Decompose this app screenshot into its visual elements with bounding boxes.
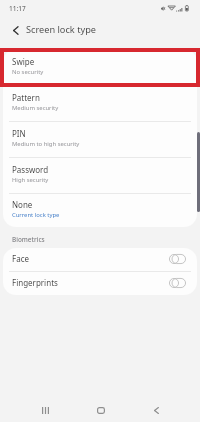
staticText: Face bbox=[12, 253, 29, 264]
staticText: Biometrics bbox=[12, 235, 45, 244]
staticText: High security bbox=[12, 176, 49, 184]
button[interactable]: Recent apps bbox=[33, 398, 57, 422]
staticText: Fingerprints bbox=[12, 277, 58, 288]
button[interactable]: Switch off bbox=[169, 278, 186, 288]
staticText: Current lock type bbox=[12, 211, 60, 219]
button[interactable]: Navigate up bbox=[7, 22, 23, 38]
button[interactable]: Swipe bbox=[3, 49, 197, 85]
staticText: None bbox=[12, 199, 33, 210]
button[interactable]: Home bbox=[89, 398, 113, 422]
button[interactable]: Face bbox=[3, 248, 197, 271]
staticText: 11:17 bbox=[9, 4, 26, 13]
staticText: PIN bbox=[12, 128, 26, 139]
button[interactable]: Pattern bbox=[3, 85, 197, 121]
staticText: Pattern bbox=[12, 92, 40, 103]
staticText: Medium security bbox=[12, 104, 59, 112]
staticText: No security bbox=[12, 68, 44, 76]
staticText: Password bbox=[12, 164, 49, 175]
button[interactable]: Back bbox=[144, 398, 168, 422]
staticText: Medium to high security bbox=[12, 140, 80, 148]
button[interactable]: Fingerprints bbox=[3, 271, 197, 295]
button[interactable]: None bbox=[3, 193, 197, 227]
staticText: Swipe bbox=[12, 56, 35, 67]
button[interactable]: PIN bbox=[3, 121, 197, 157]
staticText: Screen lock type bbox=[26, 23, 96, 36]
button[interactable]: Switch off bbox=[169, 254, 186, 264]
button[interactable]: Password bbox=[3, 157, 197, 193]
